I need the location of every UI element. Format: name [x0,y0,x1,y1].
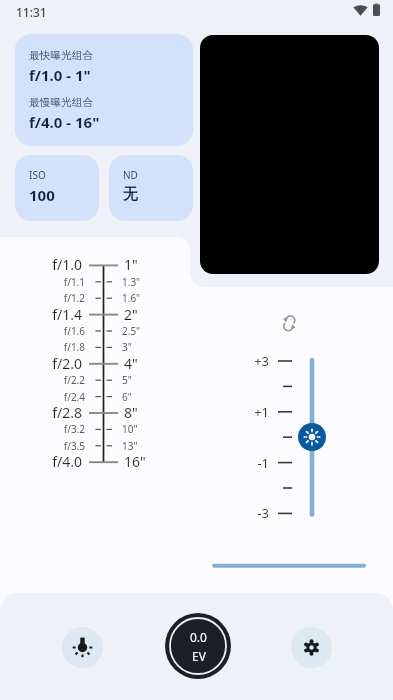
staticText: 10" [122,422,138,436]
staticText: ND [123,168,138,182]
staticText: f/4.0 [10,452,82,471]
button[interactable]: 0.0 [165,613,231,679]
button[interactable]: Exposure value thumb [298,423,326,451]
staticText: f/2.2 [10,373,85,387]
button[interactable]: White balance [62,627,103,668]
staticText: 2" [124,305,138,324]
button[interactable]: ND [109,155,193,221]
staticText: f/1.0 - 1" [29,65,91,85]
staticText: 13" [122,439,138,453]
staticText: 4" [124,354,138,373]
staticText: 最慢曝光组合 [29,96,94,109]
staticText: f/2.8 [10,403,82,422]
button[interactable]: 最快曝光组合 [15,34,193,146]
staticText: 3" [122,340,132,354]
staticText: -3 [240,504,269,522]
staticText: f/2.0 [10,354,82,373]
staticText: 0.0 [190,629,207,645]
staticText: 100 [29,185,55,205]
staticText: ISO [29,168,46,182]
staticText: f/1.6 [10,324,85,338]
staticText: +1 [240,403,269,421]
staticText: f/1.2 [10,291,85,305]
staticText: f/2.4 [10,390,85,404]
staticText: +3 [240,352,269,370]
staticText: 8" [124,403,138,422]
staticText: f/1.8 [10,340,85,354]
staticText: f/4.0 - 16" [29,112,100,132]
staticText: 1.3" [122,275,141,289]
staticText: 2.5" [122,324,141,338]
staticText: f/1.1 [10,275,85,289]
staticText: f/3.5 [10,439,85,453]
button[interactable]: ISO [15,155,99,221]
button[interactable]: Settings [291,627,332,668]
staticText: f/3.2 [10,422,85,436]
staticText: 最快曝光组合 [29,49,94,62]
staticText: 1.6" [122,291,141,305]
staticText: 16" [124,452,146,471]
staticText: 5" [122,373,132,387]
staticText: 无 [123,185,138,204]
staticText: EV [192,648,206,664]
staticText: f/1.0 [10,255,82,274]
staticText: 11:31 [16,4,47,20]
staticText: 6" [122,390,132,404]
staticText: -1 [240,454,269,472]
button[interactable]: Reset exposure [281,312,299,334]
staticText: 1" [124,255,138,274]
staticText: f/1.4 [10,305,82,324]
button[interactable]: Camera preview [200,35,379,274]
